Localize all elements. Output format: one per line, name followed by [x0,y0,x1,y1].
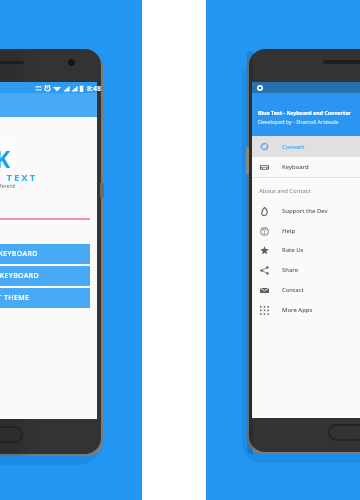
staticText: 8:48 [87,84,101,94]
staticText: Type something different! [0,183,16,190]
staticText: More Apps [282,306,313,314]
staticText: Help [282,227,296,235]
staticText: BLUE TEXT [0,171,38,184]
staticText: Convert [282,143,305,151]
button[interactable]: ENABLE KEYBOARD [0,244,90,264]
button[interactable]: More Apps [252,300,360,320]
button[interactable]: Keyboard [252,157,360,177]
button[interactable]: Convert [252,136,360,157]
staticText: ENABLE KEYBOARD [0,249,38,259]
staticText: Blue Text - Keyboard and Converter [258,109,351,116]
staticText: Contact [282,286,304,294]
staticText: About and Contact [259,187,311,195]
button[interactable]: Contact [252,280,360,300]
button[interactable]: Support the Dev [252,201,360,221]
staticText: Share [282,266,299,274]
staticText: Developed by - Shamoil Arsiwala [258,118,339,125]
button[interactable]: Rate Us [252,240,360,260]
button[interactable]: SELECT THEME [0,288,90,308]
staticText: SELECT THEME [0,293,30,303]
button[interactable]: CHOOSE KEYBOARD [0,266,90,286]
staticText: Keyboard [282,163,309,171]
button[interactable]: Help [252,221,360,241]
button[interactable]: Share [252,260,360,280]
staticText: CHOOSE KEYBOARD [0,271,39,281]
staticText: Rate Us [282,246,304,254]
staticText: K [0,143,11,169]
staticText: Support the Dev [282,207,328,215]
